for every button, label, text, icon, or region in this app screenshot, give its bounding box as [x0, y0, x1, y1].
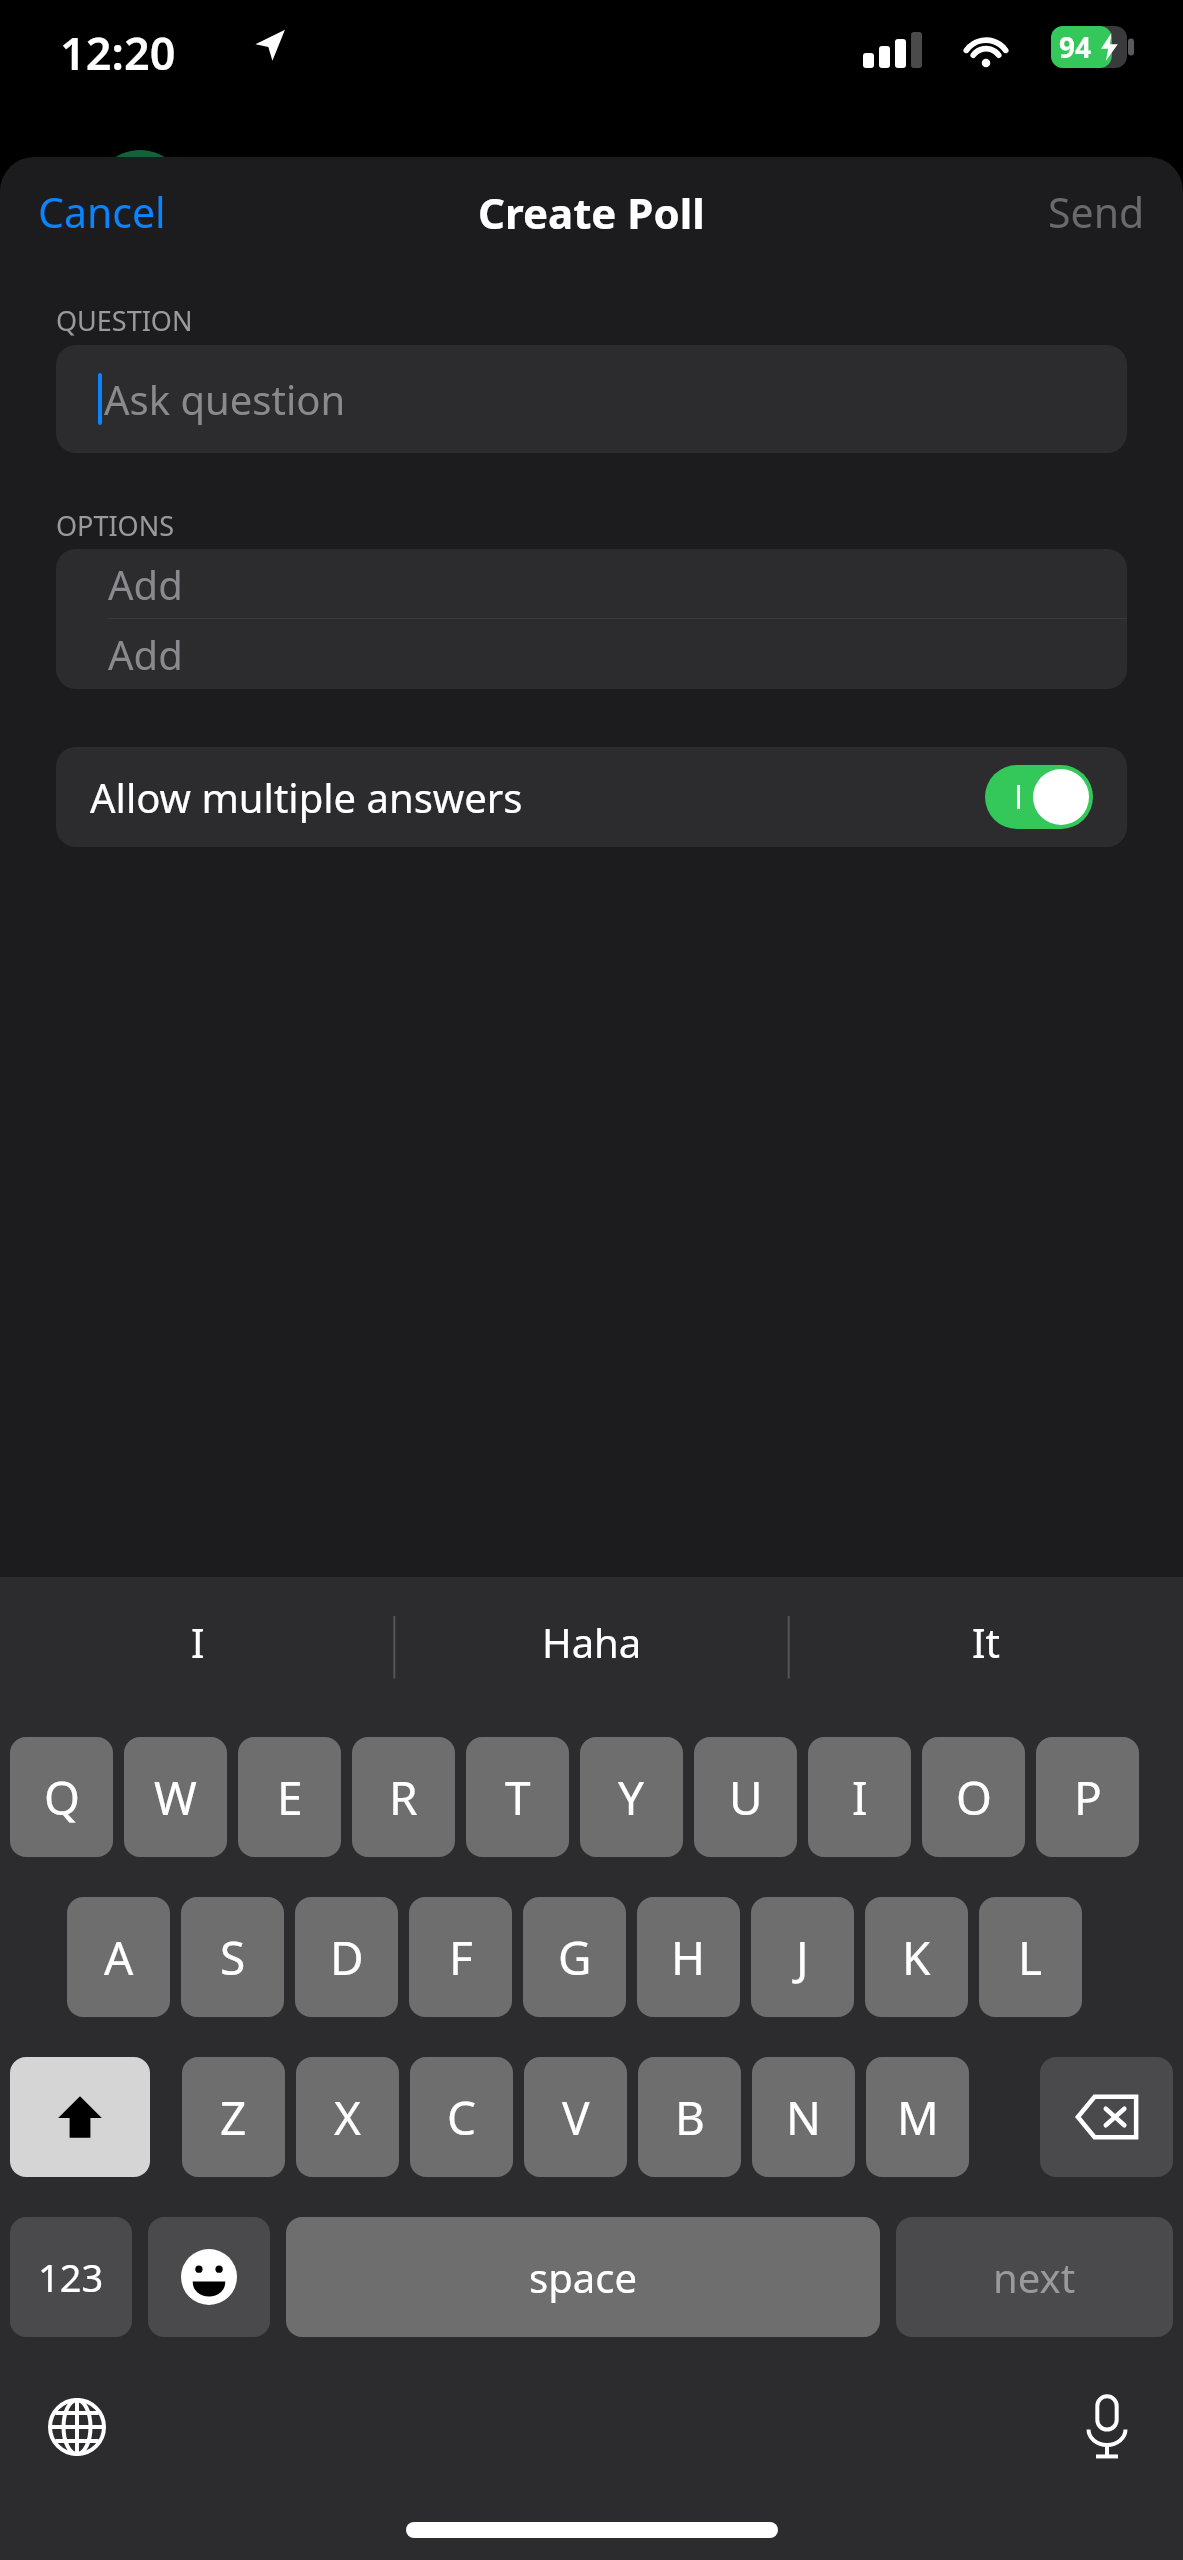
- staticText: U: [729, 1766, 763, 1829]
- staticText: T: [505, 1766, 531, 1829]
- button[interactable]: C: [410, 2057, 513, 2177]
- staticText: G: [558, 1926, 592, 1989]
- staticText: S: [220, 1926, 246, 1989]
- staticText: Add: [108, 557, 183, 611]
- staticText: R: [389, 1766, 418, 1829]
- staticText: Create Poll: [478, 184, 705, 241]
- button[interactable]: Cancel: [20, 174, 184, 250]
- staticText: 123: [38, 2251, 104, 2303]
- button[interactable]: I: [0, 1577, 395, 1707]
- staticText: C: [447, 2086, 477, 2149]
- staticText: next: [993, 2250, 1076, 2304]
- button[interactable]: I: [808, 1737, 911, 1857]
- button[interactable]: M: [866, 2057, 969, 2177]
- button[interactable]: X: [296, 2057, 399, 2177]
- staticText: It: [972, 1615, 1000, 1669]
- staticText: space: [529, 2250, 637, 2304]
- button[interactable]: J: [751, 1897, 854, 2017]
- staticText: P: [1074, 1766, 1102, 1829]
- button[interactable]: D: [295, 1897, 398, 2017]
- button[interactable]: K: [865, 1897, 968, 2017]
- button[interactable]: Change keyboard: [42, 2392, 112, 2462]
- staticText: QUESTION: [56, 302, 193, 339]
- button[interactable]: N: [752, 2057, 855, 2177]
- staticText: B: [675, 2086, 705, 2149]
- button[interactable]: Q: [10, 1737, 113, 1857]
- button[interactable]: O: [922, 1737, 1025, 1857]
- staticText: I: [852, 1766, 868, 1829]
- staticText: E: [277, 1766, 303, 1829]
- button[interactable]: next: [896, 2217, 1173, 2337]
- button[interactable]: Emoji: [148, 2217, 270, 2337]
- button[interactable]: A: [67, 1897, 170, 2017]
- button[interactable]: It: [789, 1577, 1183, 1707]
- staticText: A: [104, 1926, 134, 1989]
- staticText: Y: [618, 1766, 645, 1829]
- staticText: V: [562, 2086, 590, 2149]
- staticText: W: [154, 1766, 197, 1829]
- staticText: N: [786, 2086, 821, 2149]
- staticText: 12:20: [60, 22, 176, 83]
- button[interactable]: Backspace: [1040, 2057, 1173, 2177]
- staticText: 94: [1059, 28, 1092, 66]
- button[interactable]: R: [352, 1737, 455, 1857]
- staticText: H: [671, 1926, 706, 1989]
- button[interactable]: S: [181, 1897, 284, 2017]
- button[interactable]: F: [409, 1897, 512, 2017]
- staticText: F: [449, 1926, 473, 1989]
- button[interactable]: Haha: [395, 1577, 789, 1707]
- button[interactable]: Z: [182, 2057, 285, 2177]
- staticText: Allow multiple answers: [90, 770, 985, 824]
- button[interactable]: V: [524, 2057, 627, 2177]
- staticText: D: [330, 1926, 364, 1989]
- staticText: X: [334, 2086, 361, 2149]
- staticText: Ask question: [104, 372, 346, 426]
- button[interactable]: Ask question: [56, 345, 1127, 453]
- staticText: O: [956, 1766, 992, 1829]
- button[interactable]: Add: [56, 619, 1127, 689]
- button[interactable]: 123: [10, 2217, 132, 2337]
- staticText: Add: [108, 627, 183, 681]
- button[interactable]: Y: [580, 1737, 683, 1857]
- button[interactable]: space: [286, 2217, 880, 2337]
- button[interactable]: P: [1036, 1737, 1139, 1857]
- staticText: Z: [220, 2086, 247, 2149]
- button[interactable]: T: [466, 1737, 569, 1857]
- button[interactable]: B: [638, 2057, 741, 2177]
- staticText: L: [1018, 1926, 1043, 1989]
- staticText: Q: [44, 1766, 80, 1829]
- button[interactable]: U: [694, 1737, 797, 1857]
- button[interactable]: W: [124, 1737, 227, 1857]
- staticText: Send: [1048, 184, 1145, 240]
- button[interactable]: H: [637, 1897, 740, 2017]
- button[interactable]: Allow multiple answers: [56, 747, 1127, 847]
- button[interactable]: G: [523, 1897, 626, 2017]
- button[interactable]: Send: [1032, 174, 1161, 250]
- button[interactable]: Dictation: [1072, 2392, 1142, 2462]
- staticText: I: [191, 1615, 205, 1669]
- staticText: Haha: [542, 1615, 642, 1669]
- staticText: Cancel: [38, 184, 166, 240]
- staticText: OPTIONS: [56, 507, 175, 544]
- button[interactable]: E: [238, 1737, 341, 1857]
- button[interactable]: Shift: [10, 2057, 150, 2177]
- staticText: M: [897, 2086, 939, 2149]
- staticText: J: [796, 1926, 809, 1989]
- button[interactable]: L: [979, 1897, 1082, 2017]
- other: Allow multiple answers toggle: [985, 765, 1093, 829]
- button[interactable]: Add: [56, 549, 1127, 618]
- staticText: K: [902, 1926, 931, 1989]
